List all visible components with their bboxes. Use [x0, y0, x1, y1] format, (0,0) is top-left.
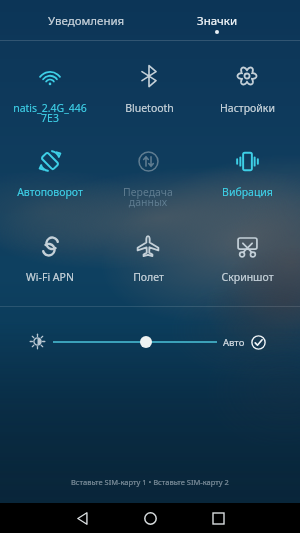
other: Brightness [30, 334, 45, 349]
button[interactable]: Авто [223, 333, 266, 351]
staticText: Настройки [220, 101, 275, 115]
button[interactable] [101, 224, 195, 296]
staticText: Wi-Fi APN [26, 270, 74, 284]
button[interactable]: Уведомления [24, 0, 148, 41]
staticText: natis_2.4G_446 7E3 [13, 101, 87, 125]
staticText: Автоповорот [17, 185, 83, 199]
button[interactable] [102, 54, 196, 126]
staticText: Уведомления [48, 13, 125, 29]
staticText: Полет [133, 270, 164, 284]
staticText: Скриншот [221, 270, 274, 284]
button[interactable] [3, 224, 97, 296]
staticText: Вставьте SIM-карту 1 • Вставьте SIM-карт… [71, 477, 229, 487]
button[interactable] [140, 336, 152, 348]
button[interactable] [3, 139, 97, 211]
staticText: Значки [197, 13, 238, 29]
button[interactable] [200, 54, 294, 126]
button[interactable]: Главный экран [120, 503, 180, 533]
button[interactable] [101, 139, 195, 211]
button[interactable] [200, 139, 294, 211]
button[interactable] [200, 224, 294, 296]
staticText: Вибрация [222, 185, 273, 199]
staticText: Bluetooth [125, 101, 174, 115]
staticText: Авто [223, 336, 245, 349]
staticText: Передача данных [123, 185, 173, 209]
button[interactable]: Обзор [188, 503, 248, 533]
button[interactable] [3, 54, 97, 126]
button[interactable]: Значки [160, 0, 275, 41]
button[interactable]: Назад [52, 503, 112, 533]
